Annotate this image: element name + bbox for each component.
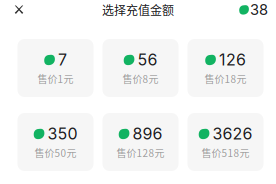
staticText: 售价8元: [122, 71, 158, 86]
staticText: 38: [250, 1, 268, 18]
staticText: 售价18元: [204, 71, 246, 86]
staticText: 350: [47, 124, 77, 143]
staticText: 56: [137, 50, 157, 69]
button[interactable]: 38: [233, 2, 268, 18]
button[interactable]: 3626: [187, 113, 263, 171]
staticText: 126: [219, 50, 246, 69]
button[interactable]: 7: [17, 39, 93, 97]
staticText: 7: [58, 50, 67, 69]
staticText: 896: [132, 124, 162, 143]
button[interactable]: 350: [17, 113, 93, 171]
staticText: 售价128元: [116, 145, 164, 160]
staticText: 3626: [212, 124, 252, 143]
staticText: 售价50元: [34, 145, 76, 160]
button[interactable]: 896: [102, 113, 178, 171]
staticText: 选择充值金额: [102, 1, 174, 18]
button[interactable]: Close: [8, 2, 30, 18]
staticText: 售价1元: [37, 71, 73, 86]
staticText: 售价518元: [201, 145, 249, 160]
button[interactable]: 126: [187, 39, 263, 97]
button[interactable]: 56: [102, 39, 178, 97]
